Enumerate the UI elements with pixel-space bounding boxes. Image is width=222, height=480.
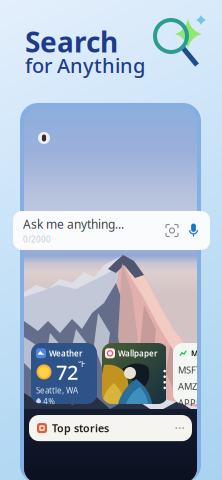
button[interactable]: Wallpaper: [102, 343, 168, 404]
button[interactable]: Weather: [31, 343, 97, 404]
staticText: GE: [178, 413, 190, 425]
staticText: Wallpaper: [118, 348, 157, 359]
staticText: 4%: [43, 396, 55, 406]
staticText: Seattle, WA: [36, 385, 78, 396]
staticText: Top stories: [52, 421, 109, 435]
staticText: M: [191, 348, 198, 359]
staticText: Weather: [49, 348, 82, 359]
staticText: Ask me anything...: [23, 216, 124, 232]
staticText: APPL: [178, 396, 201, 409]
staticText: 0/2000: [23, 234, 51, 245]
staticText: for Anything: [25, 52, 145, 79]
staticText: 72: [56, 359, 78, 385]
staticText: AMZN: [178, 380, 204, 392]
button[interactable]: M: [173, 343, 222, 404]
staticText: MSFT: [178, 364, 201, 376]
button[interactable]: Ask me anything...: [13, 211, 210, 250]
button[interactable]: Top stories: [29, 415, 192, 441]
staticText: °F: [78, 359, 85, 369]
staticText: Search: [25, 23, 118, 60]
